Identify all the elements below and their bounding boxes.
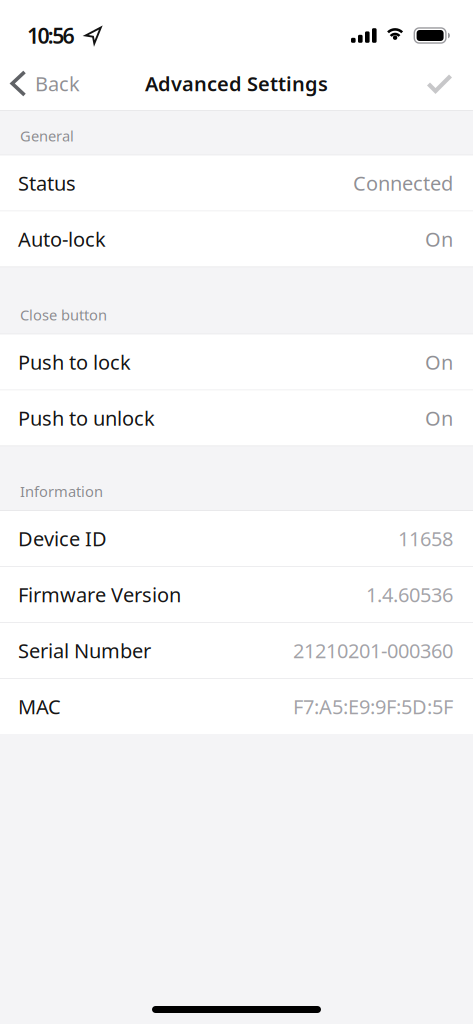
button[interactable]: Status [0,155,473,210]
button[interactable]: Device ID [0,511,473,566]
staticText: On [425,226,453,252]
button[interactable]: Firmware Version [0,567,473,622]
staticText: Status [18,170,76,196]
staticText: 21210201-000360 [293,637,453,664]
button[interactable]: MAC [0,679,473,734]
staticText: Push to unlock [18,405,155,431]
staticText: 11658 [398,525,453,552]
staticText: Back [35,70,80,97]
staticText: On [425,349,453,375]
staticText: Close button [20,305,107,324]
staticText: Advanced Settings [145,70,328,97]
staticText: Connected [353,170,453,196]
button[interactable]: Auto-lock [0,211,473,266]
button[interactable]: Save [426,73,473,93]
staticText: On [425,405,453,431]
staticText: 1.4.60536 [366,581,453,608]
staticText: Push to lock [18,349,131,375]
staticText: General [20,126,74,145]
staticText: Firmware Version [18,581,181,608]
button[interactable]: Push to unlock [0,390,473,445]
staticText: Information [20,481,103,501]
button[interactable]: Serial Number [0,623,473,678]
staticText: MAC [18,693,61,720]
staticText: Serial Number [18,637,151,664]
staticText: F7:A5:E9:9F:5D:5F [293,693,453,720]
staticText: 10:56 [27,21,75,50]
staticText: Device ID [18,525,107,552]
staticText: Auto-lock [18,226,106,252]
button[interactable]: Push to lock [0,334,473,389]
button[interactable]: Back [0,70,80,97]
